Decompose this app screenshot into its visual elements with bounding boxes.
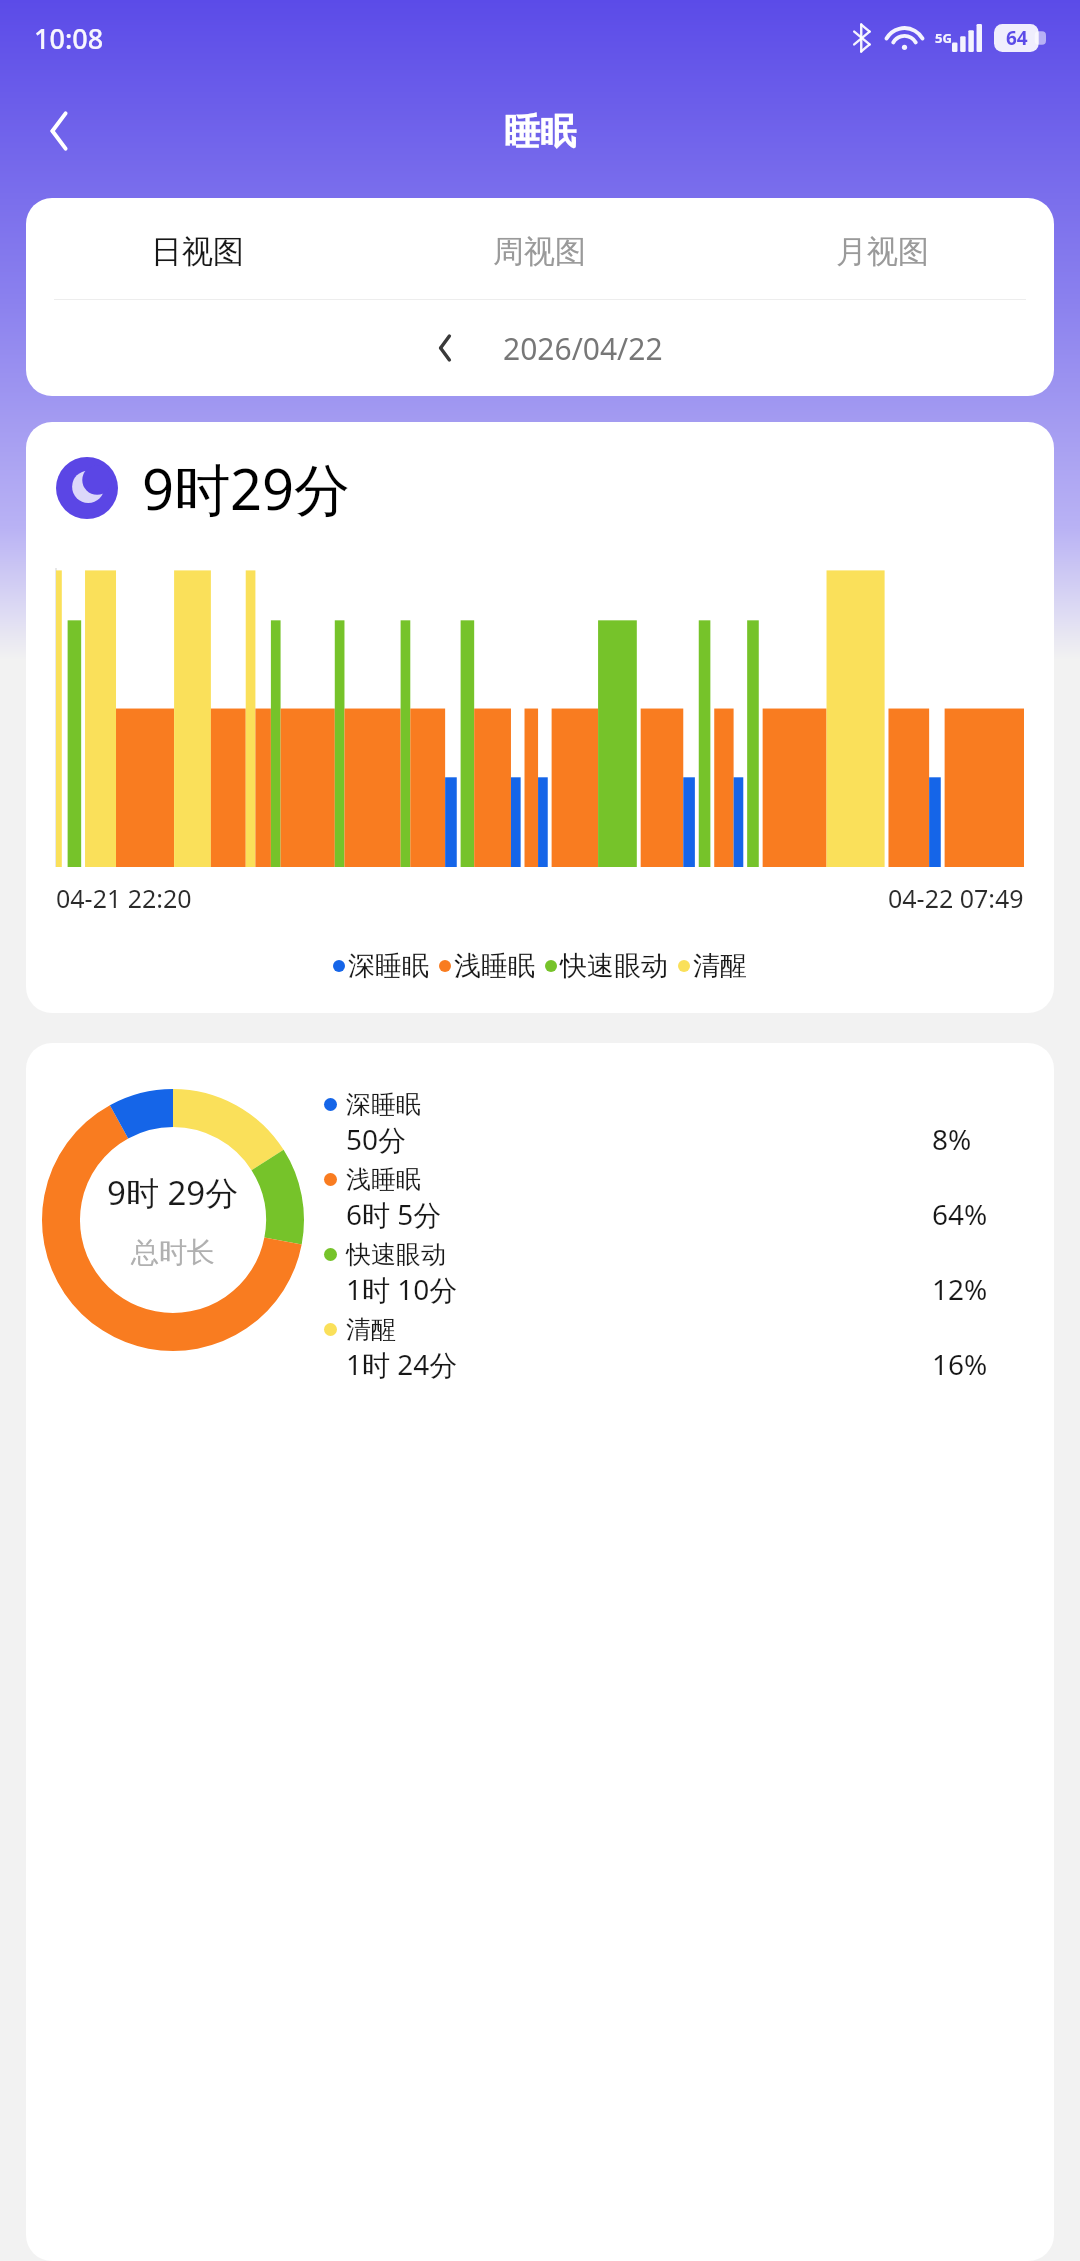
button[interactable]: 周视图 [368,220,711,283]
staticText: 6时 5分 [346,1195,932,1233]
staticText: 10:08 [34,20,104,57]
button[interactable]: Back [30,102,88,160]
staticText: 总时长 [131,1235,215,1270]
button[interactable]: 日视图 [26,220,368,283]
staticText: 快速眼动 [346,1239,446,1270]
staticText: 1时 24分 [346,1345,932,1383]
staticText: 04-21 22:20 [56,881,192,915]
staticText: 深睡眠 [348,949,429,983]
staticText: 快速眼动 [560,949,668,983]
staticText: 1时 10分 [346,1270,932,1308]
staticText: 64% [932,1195,1028,1233]
button[interactable]: Previous day [417,320,473,376]
staticText: 2026/04/22 [503,328,663,369]
staticText: 日视图 [151,232,244,271]
staticText: 睡眠 [504,109,576,154]
staticText: 9时 29分 [107,1170,239,1215]
button[interactable]: 月视图 [711,220,1054,283]
staticText: 5G [935,29,952,47]
staticText: 月视图 [836,232,929,271]
staticText: 浅睡眠 [346,1164,421,1195]
staticText: 周视图 [493,232,586,271]
staticText: 清醒 [693,949,747,983]
staticText: 64 [1006,25,1028,51]
staticText: 浅睡眠 [454,949,535,983]
staticText: 12% [932,1270,1028,1308]
staticText: 9时29分 [142,450,351,526]
staticText: 8% [932,1120,1028,1158]
staticText: 深睡眠 [346,1089,421,1120]
staticText: 50分 [346,1120,932,1158]
staticText: 16% [932,1345,1028,1383]
staticText: 04-22 07:49 [888,881,1024,915]
staticText: 清醒 [346,1314,396,1345]
